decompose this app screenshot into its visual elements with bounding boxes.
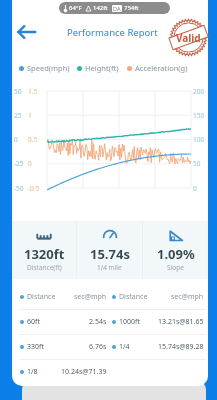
staticText: 10.24s@71.39 [61, 367, 107, 377]
staticText: -50 [14, 184, 24, 193]
staticText: 1000ft [119, 317, 140, 327]
staticText: Performance Report [67, 26, 158, 39]
staticText: Distance [119, 292, 148, 302]
button[interactable]: 60ft [12, 310, 208, 334]
staticText: DA [113, 5, 121, 12]
staticText: sec@mph [171, 292, 204, 302]
staticText: 1320ft [24, 245, 65, 263]
staticText: 60ft [27, 317, 40, 327]
button[interactable]: 330ft [12, 335, 208, 359]
staticText: Height(ft) [85, 63, 119, 73]
staticText: 15.74s [90, 245, 130, 263]
button[interactable]: 1/8 [12, 360, 208, 384]
button[interactable]: Back [13, 18, 41, 46]
staticText: Acceleration(g) [135, 63, 188, 73]
button[interactable]: 15.74s [77, 221, 142, 279]
staticText: 50 [193, 159, 201, 168]
staticText: 754ft [124, 4, 139, 12]
staticText: Distance(ft) [27, 263, 62, 272]
staticText: sec@mph [74, 292, 107, 302]
button[interactable]: Distance [12, 285, 208, 309]
staticText: 0 [193, 184, 197, 193]
staticText: 1/4 [119, 342, 130, 352]
staticText: 6.76s [89, 342, 107, 352]
staticText: Valid [176, 31, 201, 45]
staticText: -0.5 [28, 184, 40, 193]
staticText: 200 [193, 87, 205, 96]
staticText: 330ft [27, 342, 44, 352]
staticText: 25 [14, 111, 22, 120]
staticText: 1 [28, 111, 32, 120]
staticText: Speed(mph) [27, 63, 70, 73]
staticText: 64°F [69, 4, 82, 12]
staticText: Distance [27, 292, 56, 302]
staticText: 0 [14, 135, 18, 144]
staticText: 50 [14, 87, 22, 96]
staticText: 142ft [93, 4, 108, 12]
staticText: 0.5 [28, 135, 38, 144]
staticText: 150 [193, 111, 205, 120]
staticText: 0 [28, 159, 32, 168]
staticText: Slope [167, 263, 184, 272]
staticText: 1.09% [157, 245, 195, 263]
staticText: 1/4 mile [97, 263, 122, 272]
staticText: 2.54s [89, 317, 107, 327]
button[interactable]: 1.09% [143, 221, 208, 279]
staticText: 15.74s@89.28 [158, 342, 204, 352]
button[interactable]: 1320ft [12, 221, 76, 279]
staticText: 13.21s@81.65 [158, 317, 204, 327]
staticText: -25 [14, 159, 24, 168]
staticText: 1.5 [28, 87, 38, 96]
staticText: 1/8 [27, 367, 38, 377]
staticText: 100 [193, 135, 205, 144]
